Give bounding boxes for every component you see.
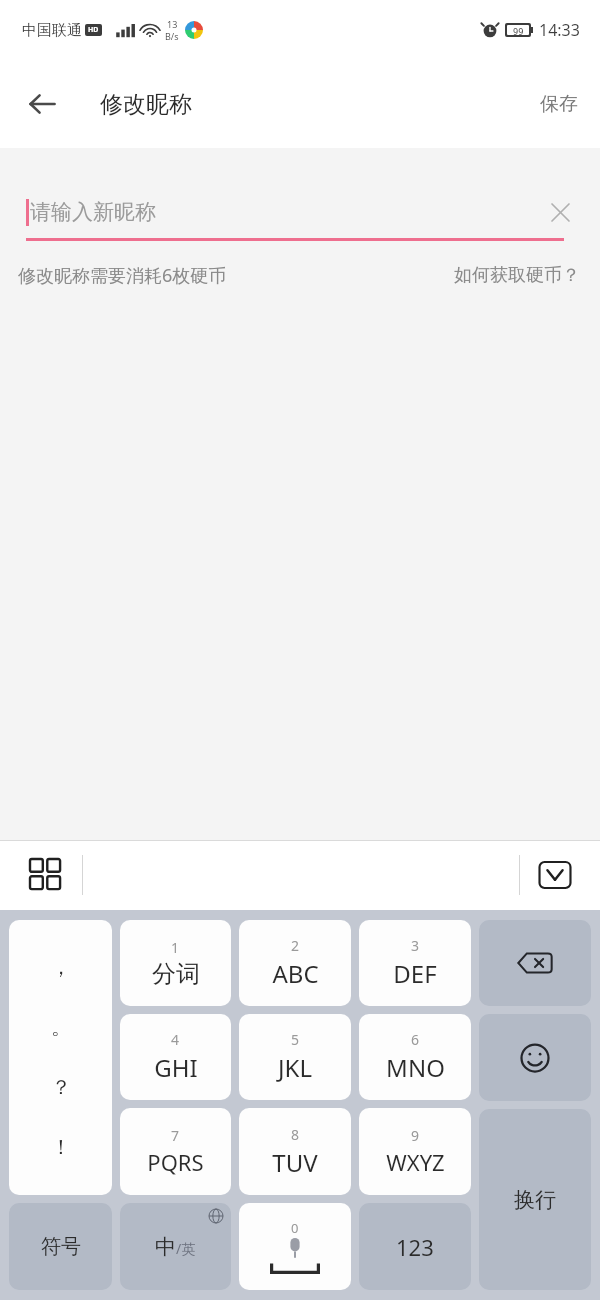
staticText: GHI: [154, 1051, 198, 1084]
button[interactable]: 中: [120, 1203, 231, 1290]
staticText: 123: [396, 1232, 434, 1262]
staticText: 14:33: [539, 19, 580, 41]
button[interactable]: 1: [120, 920, 231, 1006]
staticText: 。: [51, 1015, 71, 1040]
button[interactable]: 5: [239, 1014, 351, 1100]
staticText: 1: [171, 938, 180, 957]
button[interactable]: 2: [239, 920, 351, 1006]
staticText: 保存: [540, 92, 578, 116]
button[interactable]: 4: [120, 1014, 231, 1100]
staticText: 0: [291, 1219, 299, 1237]
button[interactable]: 如何获取硬币？: [454, 264, 580, 287]
staticText: 99: [513, 25, 524, 35]
button[interactable]: 0: [239, 1203, 351, 1290]
button[interactable]: Emoji: [479, 1014, 591, 1101]
button[interactable]: Clear: [540, 192, 580, 232]
staticText: 4: [171, 1030, 180, 1049]
staticText: 修改昵称: [100, 90, 192, 119]
staticText: 3: [411, 936, 420, 955]
staticText: 中国联通: [22, 21, 82, 40]
staticText: ！: [51, 1135, 71, 1160]
staticText: 13: [167, 18, 178, 30]
button[interactable]: 8: [239, 1108, 351, 1195]
staticText: 5: [291, 1030, 300, 1049]
button[interactable]: Hide keyboard: [534, 854, 576, 896]
button[interactable]: 7: [120, 1108, 231, 1195]
staticText: 换行: [514, 1187, 556, 1213]
staticText: JKL: [278, 1051, 312, 1084]
staticText: WXYZ: [386, 1147, 445, 1177]
button[interactable]: 9: [359, 1108, 471, 1195]
button[interactable]: Back: [14, 76, 70, 132]
staticText: 中: [155, 1234, 176, 1260]
button[interactable]: 6: [359, 1014, 471, 1100]
staticText: 如何获取硬币？: [454, 264, 580, 287]
staticText: DEF: [393, 957, 437, 990]
staticText: 8: [291, 1125, 300, 1144]
staticText: MNO: [386, 1051, 445, 1084]
staticText: ABC: [272, 957, 319, 990]
staticText: ，: [51, 955, 71, 980]
staticText: 9: [411, 1126, 420, 1145]
staticText: TUV: [272, 1146, 318, 1179]
button[interactable]: 请输入新昵称: [0, 186, 600, 238]
staticText: HD: [88, 25, 99, 35]
staticText: 6: [411, 1030, 420, 1049]
button[interactable]: 3: [359, 920, 471, 1006]
button[interactable]: 保存: [518, 60, 600, 148]
button[interactable]: Punctuation: [9, 920, 112, 1195]
staticText: 请输入新昵称: [30, 199, 156, 225]
staticText: /英: [176, 1239, 196, 1258]
staticText: 符号: [41, 1234, 81, 1259]
staticText: 2: [291, 936, 300, 955]
button[interactable]: 换行: [479, 1109, 591, 1290]
button[interactable]: Backspace: [479, 920, 591, 1006]
staticText: 分词: [152, 959, 200, 989]
button[interactable]: Keyboard layouts: [22, 851, 70, 899]
staticText: ？: [51, 1075, 71, 1100]
staticText: PQRS: [147, 1147, 204, 1177]
staticText: 修改昵称需要消耗6枚硬币: [18, 263, 227, 288]
staticText: 7: [171, 1126, 180, 1145]
staticText: B/s: [165, 30, 179, 42]
button[interactable]: 符号: [9, 1203, 112, 1290]
button[interactable]: 123: [359, 1203, 471, 1290]
